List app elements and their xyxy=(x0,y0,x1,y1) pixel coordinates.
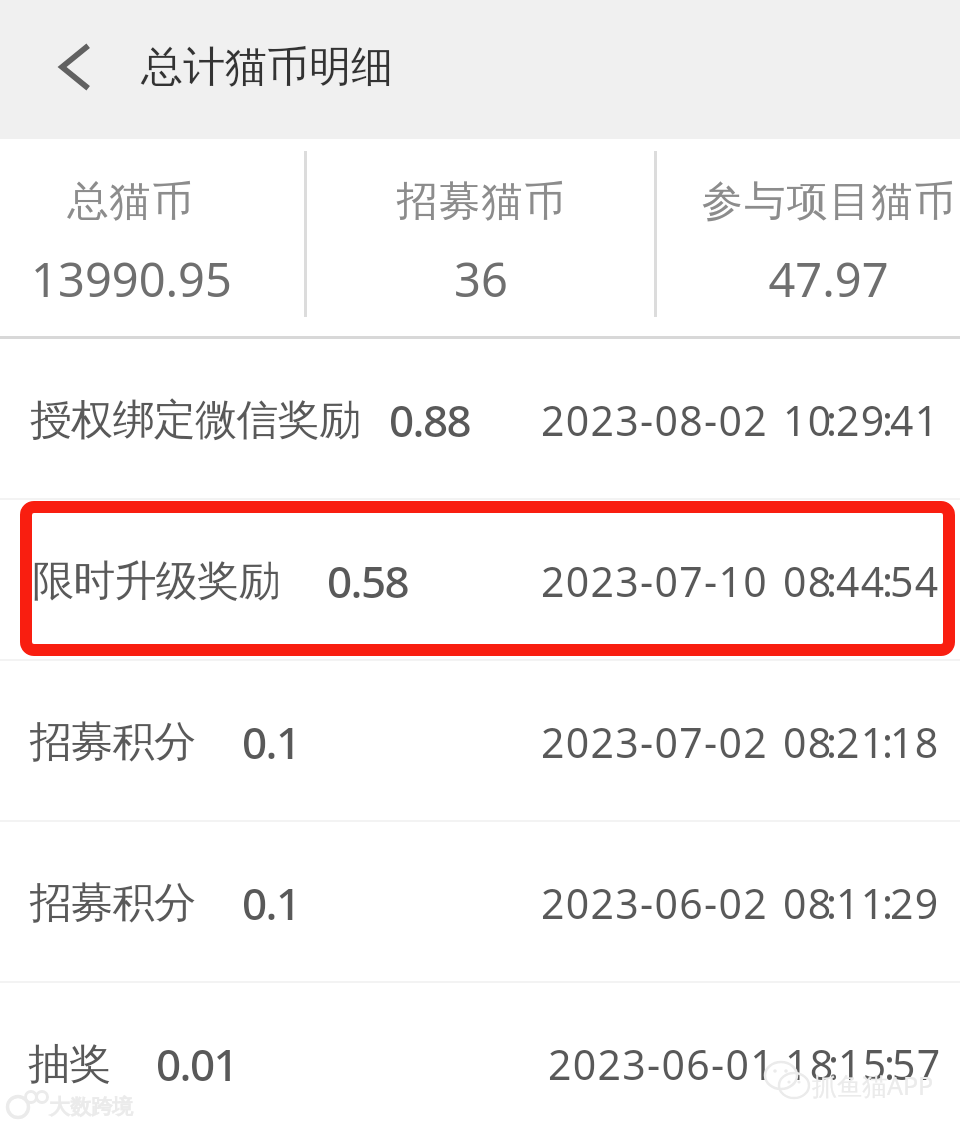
staticText: 54 xyxy=(890,553,940,609)
staticText: 总计猫币明细 xyxy=(141,41,393,94)
staticText: 29 xyxy=(836,392,886,448)
staticText: : xyxy=(826,392,839,448)
staticText: : xyxy=(882,392,895,448)
staticText: : xyxy=(882,714,895,770)
staticText: 2023-08-02 xyxy=(541,392,769,448)
staticText: 0.88 xyxy=(389,390,471,450)
staticText: 10 xyxy=(783,392,833,448)
staticText: 总猫币 xyxy=(67,176,195,228)
staticText: 15 xyxy=(838,1036,888,1092)
staticText: 21 xyxy=(836,714,886,770)
staticText: : xyxy=(882,553,895,609)
button[interactable]: 抽奖 xyxy=(0,983,960,1125)
staticText: 2023-07-10 xyxy=(541,553,769,609)
staticText: 11 xyxy=(836,875,886,931)
staticText: : xyxy=(882,875,895,931)
staticText: 招募猫币 xyxy=(396,176,566,228)
staticText: 大数跨境 xyxy=(49,1094,133,1120)
staticText: 08 xyxy=(783,714,833,770)
staticText: : xyxy=(826,714,839,770)
staticText: 47.97 xyxy=(768,247,889,311)
staticText: : xyxy=(826,875,839,931)
staticText: 抽奖 xyxy=(28,1038,111,1091)
button[interactable]: Back xyxy=(38,30,110,110)
staticText: 2023-07-02 xyxy=(541,714,769,770)
staticText: 36 xyxy=(454,247,508,311)
staticText: 18 xyxy=(785,1036,835,1092)
staticText: 29 xyxy=(890,875,940,931)
button[interactable]: 招募积分 xyxy=(0,661,960,820)
staticText: 44 xyxy=(836,553,886,609)
staticText: 41 xyxy=(890,392,940,448)
staticText: 2023-06-02 xyxy=(541,875,769,931)
button[interactable]: 限时升级奖励 xyxy=(0,500,960,659)
staticText: 2023-06-01 xyxy=(548,1036,776,1092)
staticText: 招募积分 xyxy=(30,877,196,930)
staticText: : xyxy=(828,1036,841,1092)
staticText: 13990.95 xyxy=(31,247,232,311)
staticText: : xyxy=(884,1036,897,1092)
staticText: 抓鱼猫APP xyxy=(812,1068,934,1102)
staticText: 限时升级奖励 xyxy=(32,555,280,608)
staticText: 08 xyxy=(783,553,833,609)
staticText: 0.58 xyxy=(327,551,409,611)
staticText: 招募积分 xyxy=(30,716,196,769)
button[interactable]: 招募积分 xyxy=(0,822,960,981)
button[interactable]: 授权绑定微信奖励 xyxy=(0,339,960,498)
staticText: : xyxy=(826,553,839,609)
staticText: 18 xyxy=(890,714,940,770)
staticText: 57 xyxy=(892,1036,942,1092)
staticText: 0.1 xyxy=(242,712,300,772)
staticText: 0.1 xyxy=(242,873,300,933)
staticText: 0.01 xyxy=(156,1034,238,1094)
staticText: 08 xyxy=(783,875,833,931)
staticText: 参与项目猫币 xyxy=(701,176,956,228)
staticText: 授权绑定微信奖励 xyxy=(30,394,361,447)
